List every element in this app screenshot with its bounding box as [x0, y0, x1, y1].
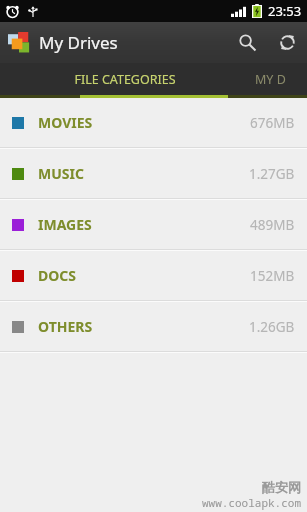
staticText: OTHERS	[38, 317, 93, 336]
staticText: DOCS	[38, 266, 77, 285]
button[interactable]: Search	[227, 22, 267, 63]
button[interactable]: MOVIES	[0, 98, 307, 147]
staticText: 23:53	[268, 2, 302, 20]
staticText: 152MB	[250, 267, 295, 285]
staticText: 676MB	[250, 114, 295, 132]
staticText: MUSIC	[38, 164, 84, 183]
staticText: MY D	[255, 71, 286, 88]
button[interactable]: FILE CATEGORIES	[0, 63, 249, 95]
staticText: FILE CATEGORIES	[74, 71, 176, 88]
button[interactable]: OTHERS	[0, 302, 307, 351]
staticText: www.coolapk.com	[202, 495, 301, 510]
button[interactable]: IMAGES	[0, 200, 307, 249]
staticText: My Drives	[39, 31, 118, 54]
staticText: 1.26GB	[249, 318, 295, 336]
staticText: 489MB	[250, 216, 295, 234]
staticText: 1.27GB	[249, 165, 295, 183]
staticText: 酷安网	[262, 479, 301, 495]
button[interactable]: DOCS	[0, 251, 307, 300]
button[interactable]: MY D	[249, 63, 307, 95]
button[interactable]: Refresh	[267, 22, 307, 63]
button[interactable]: MUSIC	[0, 149, 307, 198]
staticText: MOVIES	[38, 113, 93, 132]
staticText: IMAGES	[38, 215, 92, 234]
